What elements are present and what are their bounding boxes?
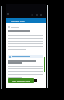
button[interactable] [8, 26, 19, 28]
button[interactable]: Recents [39, 13, 43, 17]
staticText: Google One [11, 19, 25, 22]
button[interactable]: Back [30, 13, 34, 17]
button[interactable]: Google One [6, 18, 46, 23]
button[interactable] [8, 55, 43, 58]
staticText: Get Google One [12, 79, 31, 82]
button[interactable]: Home [35, 13, 39, 17]
button[interactable]: Get Google One [8, 78, 34, 83]
